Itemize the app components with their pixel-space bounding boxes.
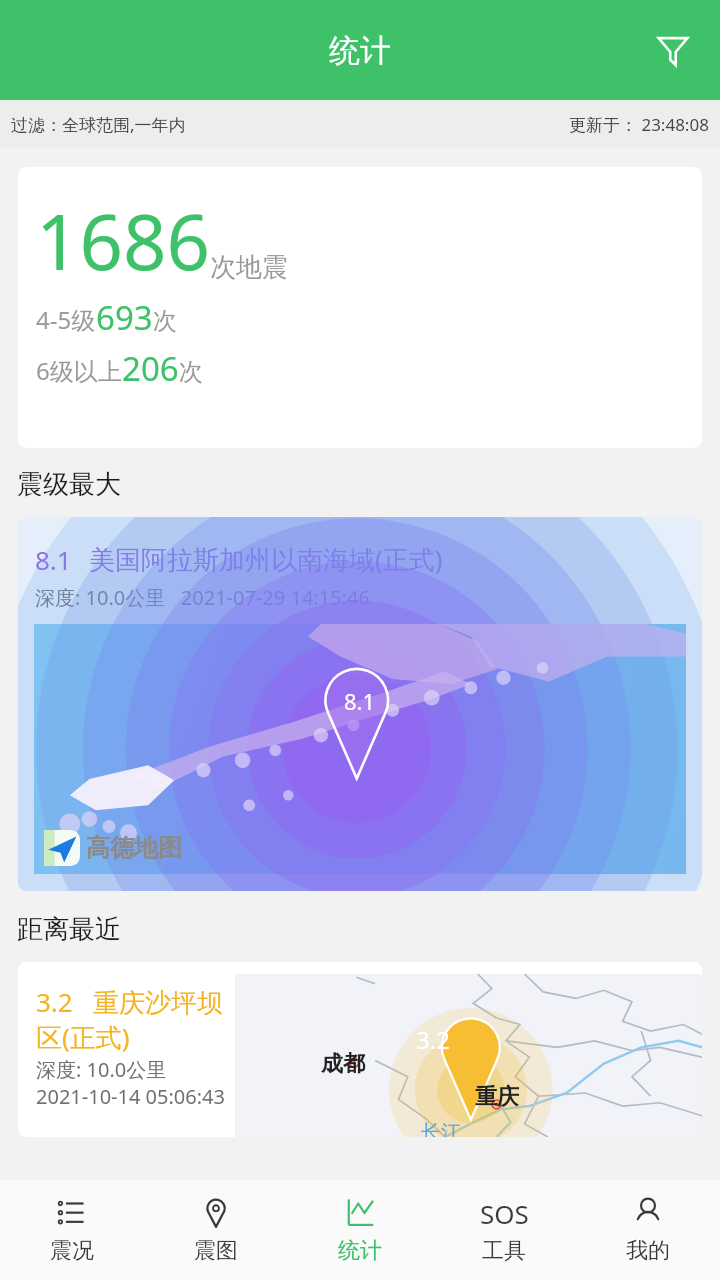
staticText: 更新于： 23:48:08 [569, 113, 709, 136]
staticText: 2021-10-14 05:06:43 [36, 1083, 225, 1110]
button[interactable]: 3.2 重庆沙坪坝区(正式) [18, 962, 702, 1137]
staticText: 震图 [194, 1237, 238, 1265]
staticText: 美国阿拉斯加州以南海域(正式) [89, 541, 443, 577]
staticText: 3.2 重庆沙坪坝区(正式) [36, 984, 235, 1054]
button[interactable]: Filter [644, 21, 702, 79]
staticText: 693 [96, 295, 153, 340]
staticText: 我的 [626, 1237, 670, 1265]
staticText: 过滤：全球范围,一年内 [11, 113, 186, 136]
staticText: 成都 [321, 1050, 365, 1078]
staticText: 1686 [36, 189, 210, 293]
button[interactable]: 我的 [576, 1180, 720, 1280]
staticText: 次 [153, 306, 177, 336]
staticText: 次 [179, 357, 203, 387]
staticText: 重庆 [475, 1083, 519, 1111]
staticText: 深度: 10.0公里 2021-07-29 14:15:46 [35, 584, 370, 611]
button[interactable]: 震况 [0, 1180, 144, 1280]
staticText: 距离最近 [17, 913, 121, 946]
staticText: 次地震 [210, 251, 288, 284]
staticText: 震况 [50, 1237, 94, 1265]
staticText: 统计 [329, 31, 391, 70]
staticText: 6级以上 [36, 354, 122, 387]
staticText: 震级最大 [17, 468, 121, 501]
staticText: 深度: 10.0公里 [36, 1056, 167, 1083]
staticText: 3.2 [416, 1023, 450, 1056]
button[interactable]: 震图 [144, 1180, 288, 1280]
button[interactable]: SOS [432, 1180, 576, 1280]
button[interactable]: 8.1 [18, 517, 702, 891]
staticText: 工具 [482, 1237, 526, 1265]
staticText: 8.1 [35, 542, 72, 577]
staticText: 高德地图 [86, 833, 182, 863]
staticText: 统计 [338, 1237, 382, 1265]
button[interactable]: 统计 [288, 1180, 432, 1280]
staticText: 206 [122, 346, 179, 391]
staticText: 4-5级 [36, 303, 96, 336]
button[interactable]: 1686 [18, 167, 702, 448]
staticText: 长江 [421, 1120, 461, 1137]
staticText: 8.1 [344, 686, 376, 716]
staticText: SOS [480, 1196, 529, 1230]
